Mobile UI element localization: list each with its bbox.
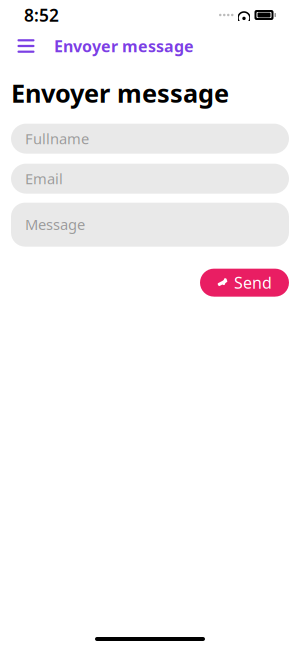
staticText: Fullname: [25, 129, 89, 148]
button[interactable]: Send: [200, 269, 289, 297]
staticText: Message: [25, 215, 85, 234]
staticText: Send: [234, 272, 272, 293]
staticText: Envoyer message: [54, 35, 194, 57]
button[interactable]: Menu: [8, 31, 44, 61]
staticText: Envoyer message: [11, 76, 229, 110]
button[interactable]: Email: [11, 164, 289, 194]
button[interactable]: Message: [11, 203, 289, 247]
staticText: Email: [25, 169, 63, 188]
button[interactable]: Envoyer message: [44, 29, 194, 63]
staticText: 8:52: [24, 3, 59, 26]
button[interactable]: Fullname: [11, 124, 289, 154]
